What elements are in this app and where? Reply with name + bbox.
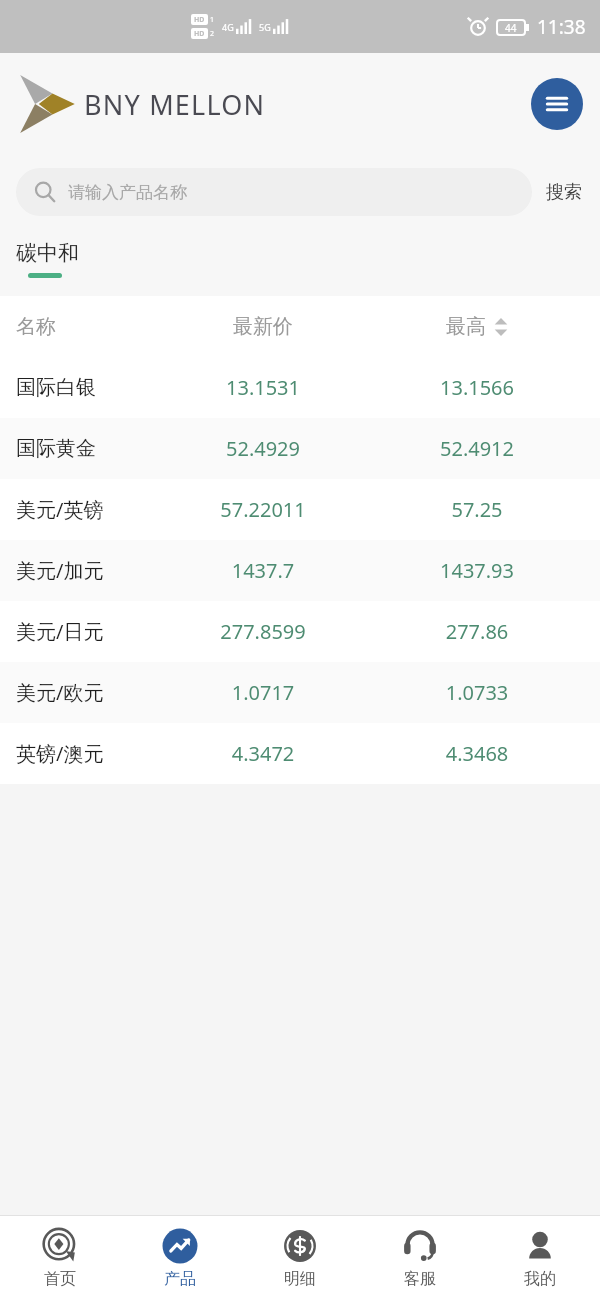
staticText: 277.86	[370, 618, 584, 645]
staticText: 请输入产品名称	[68, 182, 187, 203]
button[interactable]: 我的	[480, 1216, 600, 1299]
staticText: 57.22011	[156, 496, 370, 523]
button[interactable]: 美元/日元	[0, 601, 600, 662]
staticText: 2	[210, 29, 215, 39]
staticText: 首页	[44, 1269, 76, 1289]
staticText: 277.8599	[156, 618, 370, 645]
button[interactable]: 国际黄金	[0, 418, 600, 479]
staticText: 1437.93	[370, 557, 584, 584]
staticText: 1	[210, 15, 215, 25]
staticText: 客服	[404, 1269, 436, 1289]
staticText: 最新价	[156, 314, 370, 339]
button[interactable]: 明细	[240, 1216, 360, 1299]
staticText: 13.1566	[370, 374, 584, 401]
staticText: 美元/欧元	[16, 679, 156, 706]
staticText: 4G	[222, 21, 234, 33]
button[interactable]: Menu	[531, 78, 583, 130]
button[interactable]: 英镑/澳元	[0, 723, 600, 784]
button[interactable]: 首页	[0, 1216, 120, 1299]
staticText: 国际白银	[16, 375, 156, 400]
button[interactable]: 美元/英镑	[0, 479, 600, 540]
staticText: 明细	[284, 1269, 316, 1289]
staticText: 57.25	[370, 496, 584, 523]
button[interactable]: 请输入产品名称	[16, 168, 532, 216]
staticText: 美元/英镑	[16, 496, 156, 523]
button[interactable]: 客服	[360, 1216, 480, 1299]
staticText: 碳中和	[16, 240, 79, 266]
staticText: 1437.7	[156, 557, 370, 584]
button[interactable]: 产品	[120, 1216, 240, 1299]
staticText: 52.4912	[370, 435, 584, 462]
button[interactable]: 碳中和	[16, 240, 79, 278]
staticText: 我的	[524, 1269, 556, 1289]
staticText: 13.1531	[156, 374, 370, 401]
staticText: 名称	[16, 314, 156, 339]
button[interactable]: 搜索	[532, 173, 584, 212]
staticText: 52.4929	[156, 435, 370, 462]
button[interactable]: 美元/加元	[0, 540, 600, 601]
staticText: 5G	[259, 21, 271, 33]
staticText: 1.0733	[370, 679, 584, 706]
button[interactable]: 国际白银	[0, 357, 600, 418]
staticText: 44	[505, 21, 517, 35]
staticText: 美元/日元	[16, 618, 156, 645]
staticText: HD	[194, 29, 205, 39]
button[interactable]: 最高	[370, 314, 584, 339]
staticText: 美元/加元	[16, 557, 156, 584]
staticText: 产品	[164, 1269, 196, 1289]
staticText: BNY MELLON	[84, 86, 266, 123]
button[interactable]: 美元/欧元	[0, 662, 600, 723]
staticText: 4.3468	[370, 740, 584, 767]
staticText: 国际黄金	[16, 436, 156, 461]
staticText: 英镑/澳元	[16, 740, 156, 767]
staticText: HD	[194, 15, 205, 25]
staticText: 4.3472	[156, 740, 370, 767]
staticText: 搜索	[546, 181, 582, 204]
staticText: 1.0717	[156, 679, 370, 706]
staticText: 11:38	[537, 14, 586, 40]
staticText: 最高	[446, 314, 486, 339]
